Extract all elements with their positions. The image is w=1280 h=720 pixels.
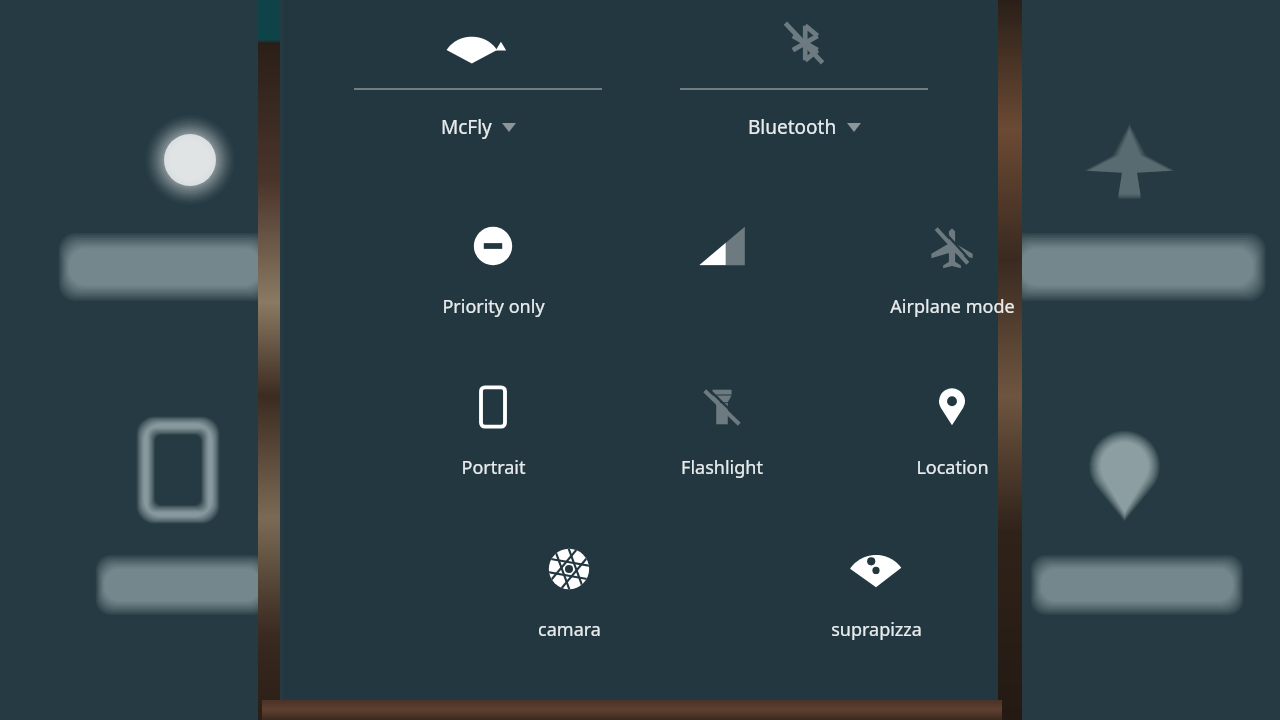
other: Airplane mode <box>928 222 976 270</box>
staticText: Portrait <box>461 455 526 480</box>
staticText: Priority only <box>442 294 545 319</box>
other: Priority only <box>469 222 517 270</box>
other: Bluetooth off <box>773 12 835 74</box>
other: Portrait <box>469 383 517 431</box>
staticText: suprapizza <box>831 617 922 642</box>
other: Wi-Fi <box>447 12 509 74</box>
other: camara <box>545 545 593 593</box>
other: Flashlight <box>698 383 746 431</box>
button[interactable]: Wi-Fi <box>353 6 603 140</box>
button[interactable]: camara <box>486 533 652 642</box>
button[interactable]: Bluetooth off <box>679 6 929 140</box>
staticText: McFly <box>441 114 492 140</box>
staticText: Airplane mode <box>890 294 1015 319</box>
button[interactable]: Mobile signal <box>639 210 805 294</box>
button[interactable]: Airplane mode <box>869 210 1035 319</box>
staticText: camara <box>538 617 601 642</box>
button[interactable]: Priority only <box>410 210 576 319</box>
staticText: Flashlight <box>681 455 763 480</box>
staticText: Location <box>916 455 989 480</box>
other: Location <box>928 383 976 431</box>
button[interactable]: Flashlight <box>639 371 805 480</box>
other: suprapizza <box>852 545 900 593</box>
staticText: Bluetooth <box>748 114 837 140</box>
button[interactable]: suprapizza <box>793 533 959 642</box>
button[interactable]: Portrait <box>410 371 576 480</box>
button[interactable]: Location <box>869 371 1035 480</box>
